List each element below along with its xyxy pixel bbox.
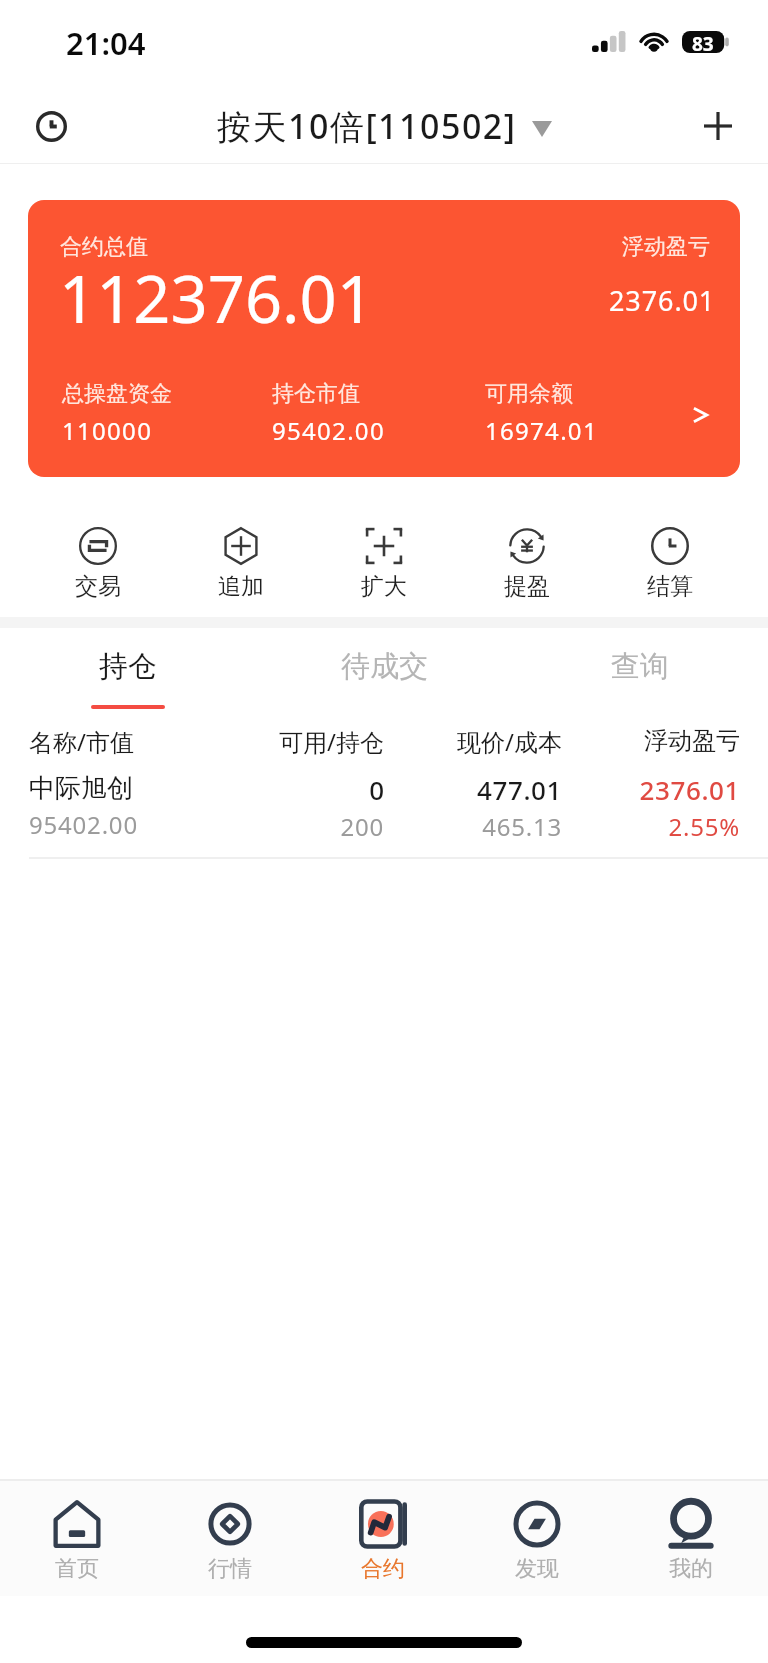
staticText: 可用余额 <box>485 380 573 408</box>
staticText: 查询 <box>611 648 669 685</box>
button[interactable]: 发现 <box>460 1481 614 1596</box>
button[interactable]: 合约总值 <box>28 200 740 477</box>
staticText: 200 <box>340 810 384 843</box>
button[interactable]: 首页 <box>0 1481 153 1596</box>
button[interactable]: 行情 <box>153 1481 306 1596</box>
button[interactable]: 持仓 <box>0 628 256 718</box>
staticText: 2376.01 <box>639 772 740 807</box>
staticText: 持仓 <box>99 648 157 685</box>
button[interactable]: Add <box>691 99 745 153</box>
staticText: 浮动盈亏 <box>622 233 710 261</box>
button[interactable]: 追加 <box>169 519 312 609</box>
button[interactable]: 中际旭创 <box>0 770 768 851</box>
staticText: 追加 <box>218 572 264 601</box>
staticText: 行情 <box>208 1555 252 1583</box>
staticText: 总操盘资金 <box>62 380 172 408</box>
button[interactable]: 合约 <box>306 1481 460 1596</box>
staticText: 中际旭创 <box>29 772 133 805</box>
staticText: 21:04 <box>66 22 146 64</box>
staticText: 95402.00 <box>272 414 385 447</box>
staticText: 合约 <box>361 1555 405 1583</box>
button[interactable]: 我的 <box>614 1481 768 1596</box>
button[interactable]: 提盈 <box>455 519 598 609</box>
staticText: 112376.01 <box>59 254 374 343</box>
staticText: 477.01 <box>476 772 562 807</box>
staticText: 提盈 <box>504 572 550 601</box>
staticText: 2.55% <box>668 810 740 843</box>
button[interactable]: 查询 <box>512 628 768 718</box>
button[interactable]: 结算 <box>598 519 741 609</box>
staticText: 持仓市值 <box>272 380 360 408</box>
staticText: 110000 <box>62 414 153 447</box>
staticText: 现价/成本 <box>384 725 562 758</box>
staticText: 可用/持仓 <box>206 725 384 758</box>
staticText: 扩大 <box>361 572 407 601</box>
button[interactable]: 按天10倍[110502] <box>211 99 558 153</box>
button[interactable]: 待成交 <box>256 628 512 718</box>
staticText: 发现 <box>515 1555 559 1583</box>
staticText: 0 <box>369 772 384 807</box>
staticText: 待成交 <box>341 648 428 685</box>
staticText: 16974.01 <box>485 414 598 447</box>
staticText: 名称/市值 <box>29 725 206 758</box>
staticText: 结算 <box>647 572 693 601</box>
staticText: 我的 <box>669 1555 713 1583</box>
staticText: 465.13 <box>482 810 562 843</box>
staticText: 浮动盈亏 <box>562 726 740 756</box>
button[interactable]: 扩大 <box>312 519 455 609</box>
staticText: 合约总值 <box>60 233 148 261</box>
staticText: 95402.00 <box>29 808 138 841</box>
button[interactable]: 交易 <box>27 519 169 609</box>
staticText: 2376.01 <box>609 282 716 319</box>
staticText: 交易 <box>75 572 121 601</box>
staticText: 83 <box>692 31 714 53</box>
staticText: 按天10倍[110502] <box>217 103 517 149</box>
staticText: 首页 <box>55 1555 99 1583</box>
button[interactable]: History <box>24 99 78 153</box>
